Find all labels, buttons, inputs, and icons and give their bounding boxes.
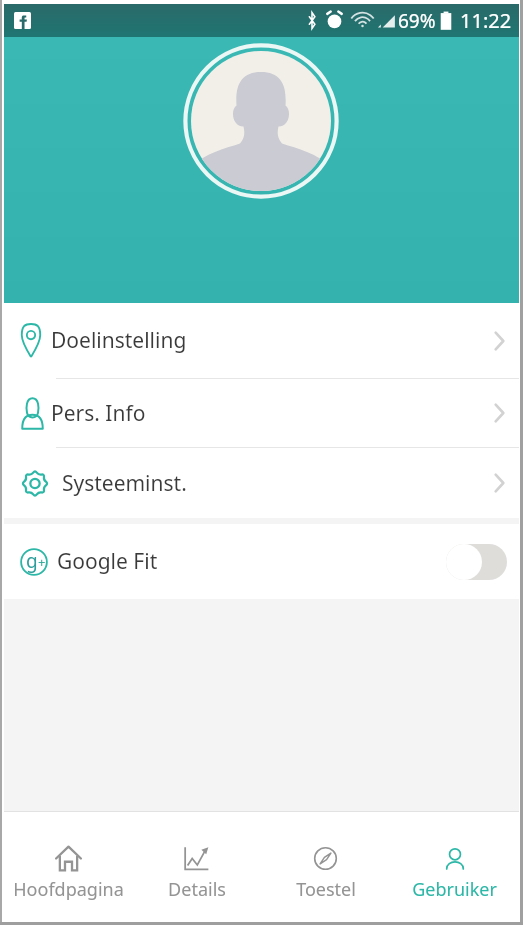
staticText: 11:22 — [460, 7, 512, 34]
button[interactable]: Pers. Info — [4, 379, 519, 447]
button[interactable]: g — [4, 524, 519, 599]
staticText: 69% — [398, 8, 436, 34]
staticText: Systeeminst. — [51, 469, 187, 498]
button[interactable]: Details — [132, 812, 261, 921]
staticText: Hoofdpagina — [13, 877, 124, 902]
button[interactable]: Gebruiker — [390, 812, 519, 921]
button[interactable]: Toestel — [261, 812, 390, 921]
staticText: Google Fit — [57, 547, 158, 576]
staticText: Pers. Info — [51, 399, 146, 428]
button[interactable]: Systeeminst. — [4, 448, 519, 518]
other: Facebook notification — [14, 12, 31, 29]
staticText: + — [38, 553, 46, 571]
button[interactable]: Hoofdpagina — [4, 812, 132, 921]
staticText: Gebruiker — [412, 877, 497, 902]
staticText: Doelinstelling — [51, 326, 187, 355]
button[interactable]: Google Fit toggle — [446, 544, 507, 580]
staticText: Toestel — [296, 877, 356, 902]
staticText: g — [26, 548, 38, 574]
staticText: Details — [168, 877, 226, 902]
button[interactable]: Doelinstelling — [4, 303, 519, 378]
